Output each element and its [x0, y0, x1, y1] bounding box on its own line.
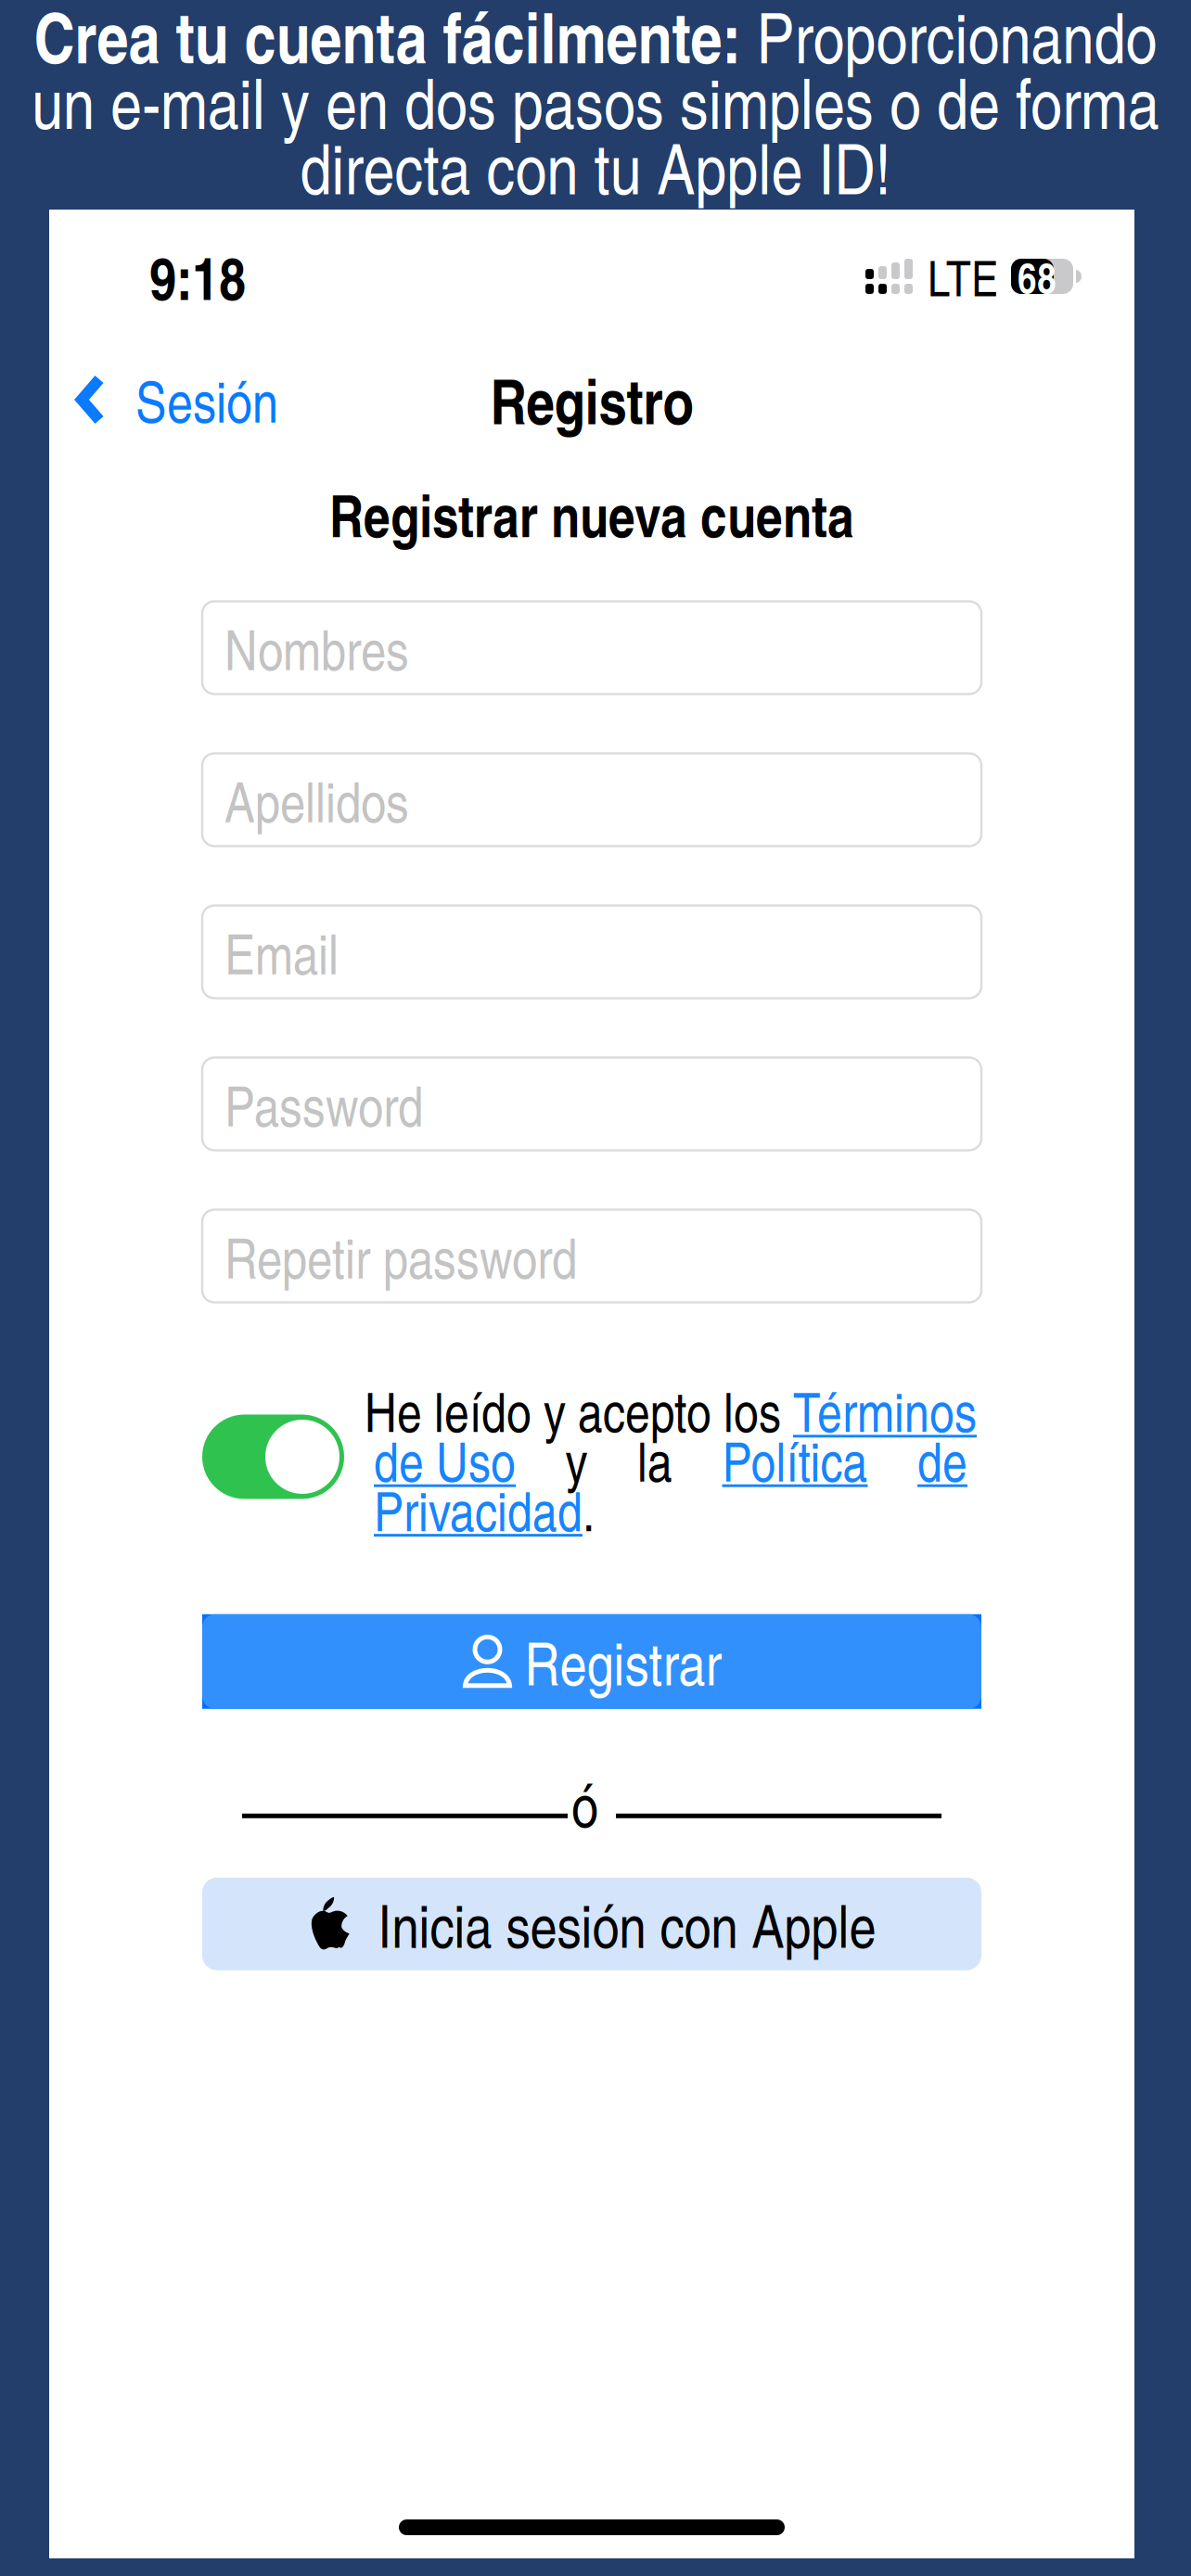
staticText: Registro [490, 356, 693, 443]
button[interactable]: Sesión [49, 355, 278, 444]
staticText: Sesión [135, 361, 278, 439]
staticText: LTE [928, 242, 998, 310]
staticText: directa con tu Apple ID! [300, 119, 891, 214]
button[interactable]: Política [722, 1422, 868, 1497]
staticText: de [917, 1422, 967, 1497]
staticText: 68 [1018, 247, 1057, 306]
staticText: Repetir password [224, 1218, 577, 1294]
staticText: un e-mail y en dos pasos simples o de fo… [32, 54, 1159, 149]
staticText: Crea tu cuenta fácilmente: Proporcionand… [34, 0, 1157, 83]
staticText: Registrar [525, 1621, 721, 1702]
staticText: Inicia sesión con Apple [378, 1883, 876, 1965]
button[interactable]: Privacidad [374, 1472, 583, 1547]
staticText: ó [571, 1763, 598, 1844]
staticText: Privacidad [374, 1472, 583, 1547]
staticText: la [637, 1422, 672, 1497]
staticText: Registrar nueva cuenta [329, 473, 854, 555]
button[interactable]: de Uso [374, 1422, 516, 1497]
staticText: Apellidos [224, 762, 409, 838]
staticText: de Uso [374, 1422, 516, 1497]
staticText: Email [224, 914, 339, 990]
staticText: Términos [793, 1373, 977, 1447]
staticText: y [565, 1422, 588, 1497]
staticText: . [583, 1472, 595, 1547]
staticText: Password [224, 1066, 423, 1142]
staticText: Política [722, 1422, 868, 1497]
button[interactable]: de [917, 1422, 967, 1497]
button[interactable]: Términos [793, 1373, 977, 1447]
staticText: Nombres [224, 610, 409, 686]
button[interactable]: Registrar [202, 1614, 981, 1709]
staticText: 9:18 [149, 234, 246, 318]
staticText: He leído y acepto los [365, 1373, 793, 1447]
button[interactable]: Inicia sesión con Apple [202, 1878, 981, 1970]
button[interactable]: Aceptar los términos de uso [202, 1415, 344, 1499]
